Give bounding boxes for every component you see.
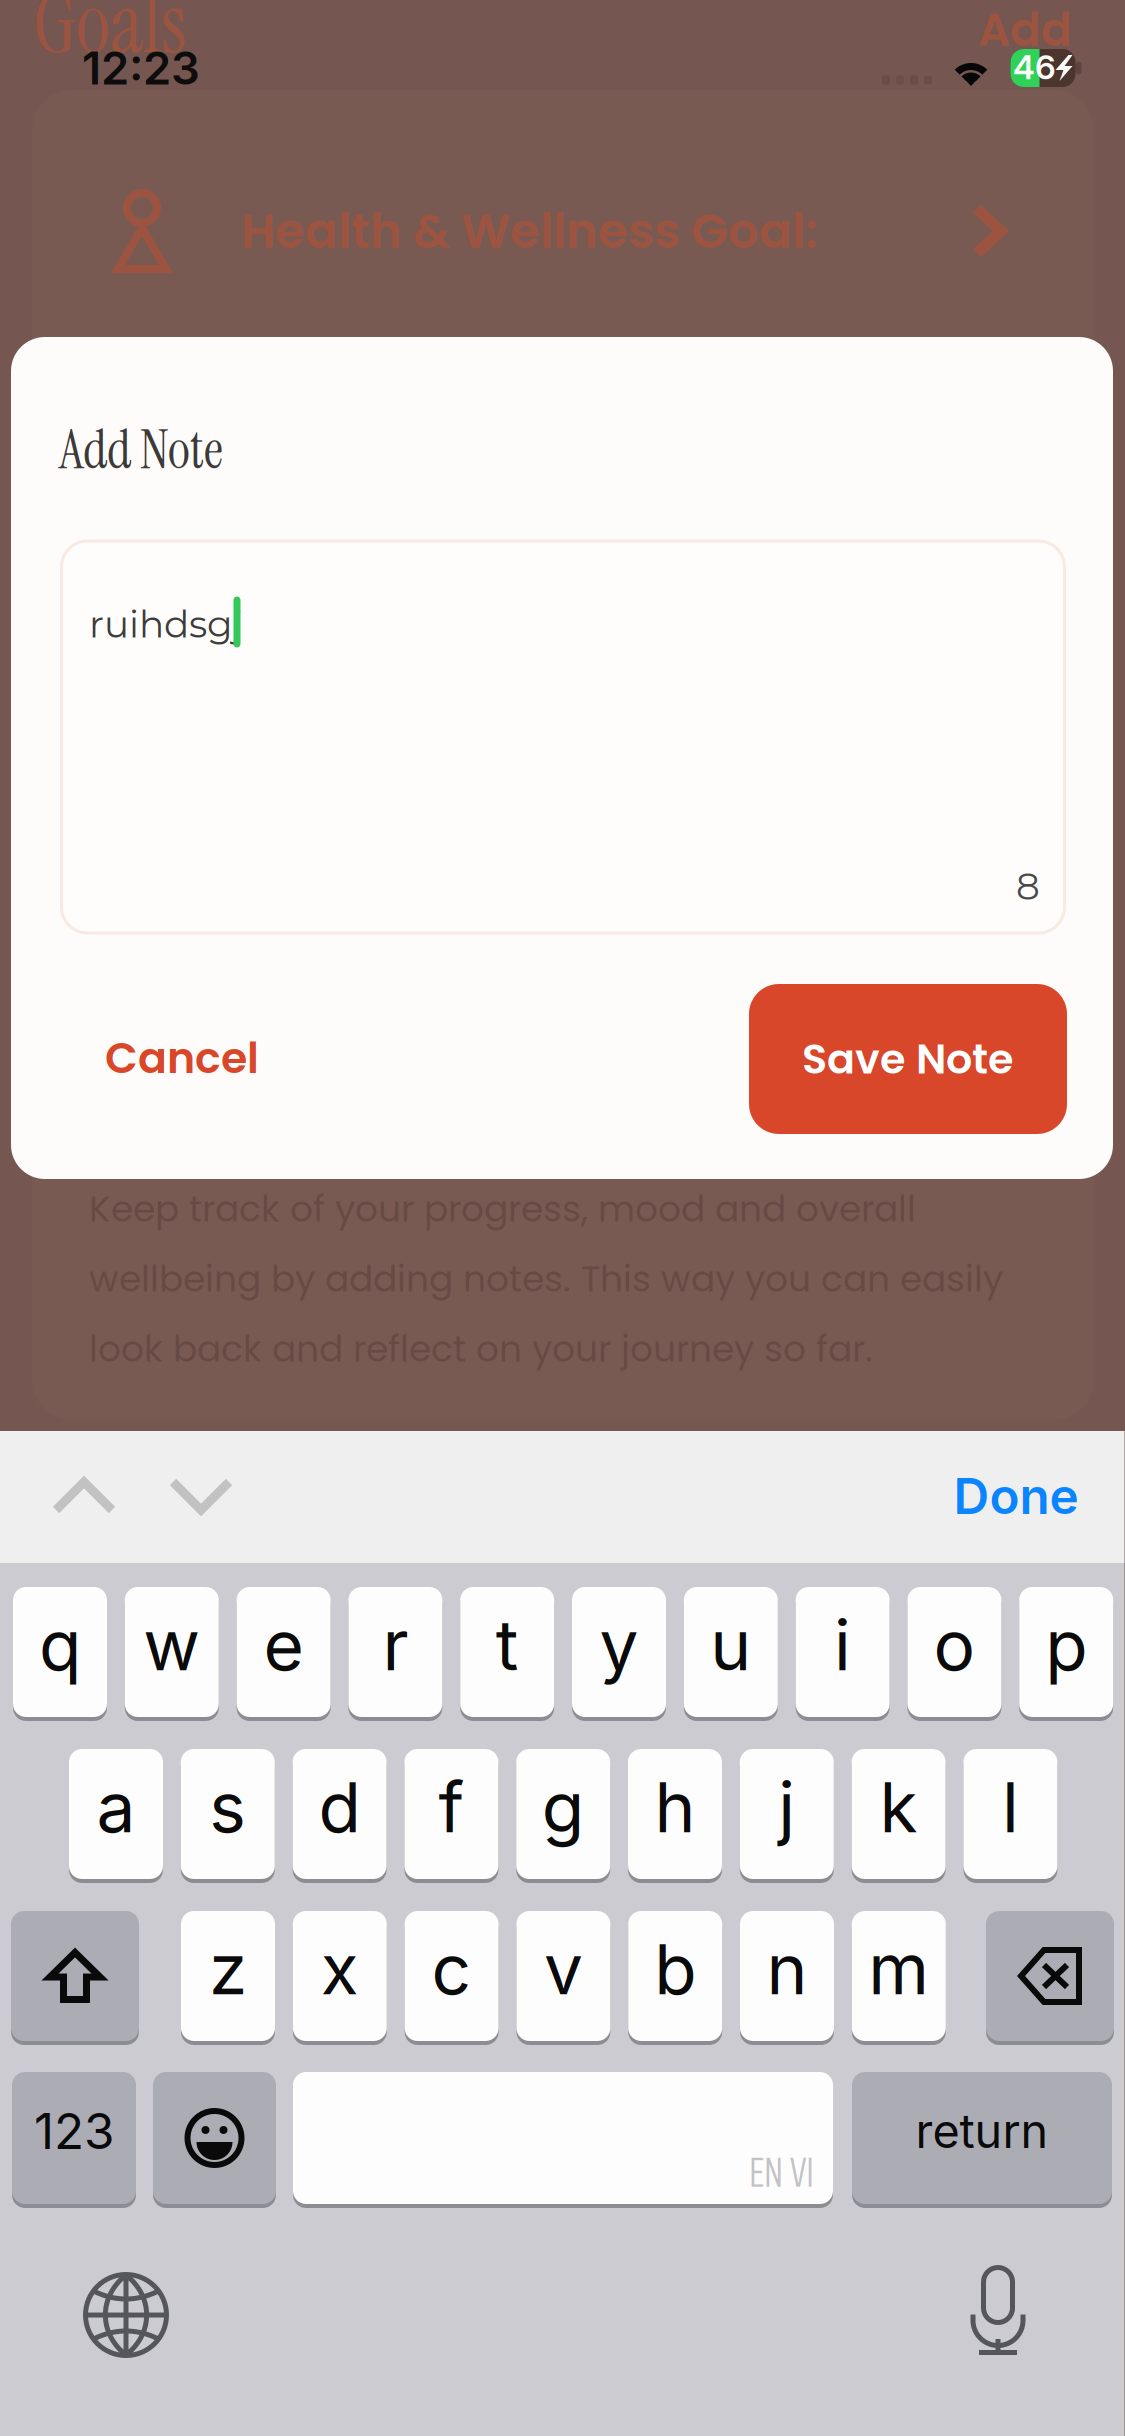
staticText: g bbox=[542, 1765, 585, 1849]
button[interactable]: y bbox=[572, 1587, 666, 1717]
staticText: m bbox=[868, 1927, 929, 2011]
button[interactable]: o bbox=[907, 1587, 1001, 1717]
button[interactable]: t bbox=[460, 1587, 554, 1717]
button[interactable]: q bbox=[13, 1587, 107, 1717]
staticText: Goals bbox=[33, 0, 186, 78]
button[interactable]: v bbox=[516, 1911, 610, 2041]
button[interactable]: Previous field bbox=[21, 1446, 147, 1546]
button[interactable]: a bbox=[69, 1749, 163, 1879]
button[interactable]: x bbox=[293, 1911, 387, 2041]
button[interactable]: Space bbox=[293, 2072, 833, 2204]
staticText: w bbox=[143, 1603, 200, 1687]
button[interactable]: r bbox=[348, 1587, 442, 1717]
button[interactable]: return bbox=[852, 2072, 1112, 2204]
staticText: t bbox=[496, 1603, 519, 1687]
button[interactable]: 123 bbox=[12, 2072, 136, 2204]
button[interactable]: m bbox=[852, 1911, 946, 2041]
button[interactable]: s bbox=[181, 1749, 275, 1879]
staticText: Save Note bbox=[802, 1030, 1014, 1088]
staticText: Add Note bbox=[59, 415, 223, 485]
staticText: k bbox=[880, 1765, 918, 1849]
staticText: x bbox=[321, 1927, 359, 2011]
staticText: y bbox=[599, 1603, 638, 1687]
staticText: u bbox=[710, 1603, 751, 1687]
button[interactable]: Save Note bbox=[749, 984, 1067, 1134]
staticText: return bbox=[915, 2103, 1048, 2159]
button[interactable]: u bbox=[684, 1587, 778, 1717]
button[interactable]: Delete bbox=[986, 1911, 1114, 2041]
staticText: ruihdsgj bbox=[89, 601, 243, 647]
button[interactable]: p bbox=[1019, 1587, 1113, 1717]
button[interactable]: f bbox=[404, 1749, 498, 1879]
button[interactable]: Cancel bbox=[67, 1003, 297, 1113]
staticText: q bbox=[39, 1603, 81, 1687]
staticText: v bbox=[544, 1927, 583, 2011]
staticText: Cancel bbox=[105, 1028, 259, 1088]
staticText: i bbox=[834, 1603, 851, 1687]
staticText: EN VI bbox=[749, 2138, 814, 2206]
button[interactable]: Shift bbox=[11, 1911, 139, 2041]
staticText: look back and reflect on your journey so… bbox=[89, 1324, 873, 1374]
staticText: Done bbox=[953, 1466, 1078, 1526]
button[interactable]: Next field bbox=[138, 1446, 264, 1546]
staticText: 12:23 bbox=[82, 41, 200, 95]
staticText: wellbeing by adding notes. This way you … bbox=[89, 1254, 1003, 1304]
staticText: Health & Wellness Goal: bbox=[241, 197, 818, 265]
button[interactable]: i bbox=[796, 1587, 890, 1717]
button[interactable]: l bbox=[963, 1749, 1057, 1879]
staticText: h bbox=[654, 1765, 695, 1849]
button[interactable]: h bbox=[628, 1749, 722, 1879]
staticText: 8 bbox=[1016, 863, 1040, 909]
button[interactable]: e bbox=[237, 1587, 331, 1717]
staticText: 46 bbox=[1013, 47, 1056, 87]
button[interactable]: b bbox=[628, 1911, 722, 2041]
staticText: d bbox=[319, 1765, 361, 1849]
staticText: n bbox=[766, 1927, 807, 2011]
staticText: e bbox=[264, 1603, 304, 1687]
staticText: Keep track of your progress, mood and ov… bbox=[89, 1184, 916, 1234]
button[interactable]: g bbox=[516, 1749, 610, 1879]
button[interactable]: d bbox=[293, 1749, 387, 1879]
button[interactable]: Next keyboard bbox=[66, 2255, 186, 2375]
button[interactable]: Done bbox=[926, 1451, 1106, 1541]
staticText: Add bbox=[978, 0, 1072, 62]
button[interactable]: z bbox=[181, 1911, 275, 2041]
staticText: b bbox=[654, 1927, 696, 2011]
staticText: j bbox=[778, 1765, 795, 1849]
staticText: s bbox=[209, 1765, 246, 1849]
button[interactable]: k bbox=[852, 1749, 946, 1879]
staticText: f bbox=[438, 1765, 464, 1849]
button[interactable]: j bbox=[740, 1749, 834, 1879]
staticText: r bbox=[382, 1603, 408, 1687]
button[interactable]: w bbox=[125, 1587, 219, 1717]
staticText: 123 bbox=[34, 2101, 114, 2161]
button[interactable]: Dictation bbox=[938, 2251, 1058, 2371]
button[interactable]: c bbox=[405, 1911, 499, 2041]
staticText: z bbox=[209, 1927, 247, 2011]
staticText: l bbox=[1002, 1765, 1019, 1849]
button[interactable]: n bbox=[740, 1911, 834, 2041]
staticText: a bbox=[96, 1765, 135, 1849]
staticText: c bbox=[432, 1927, 472, 2011]
staticText: o bbox=[933, 1603, 975, 1687]
staticText: p bbox=[1045, 1603, 1087, 1687]
button[interactable]: Emoji bbox=[153, 2072, 276, 2204]
